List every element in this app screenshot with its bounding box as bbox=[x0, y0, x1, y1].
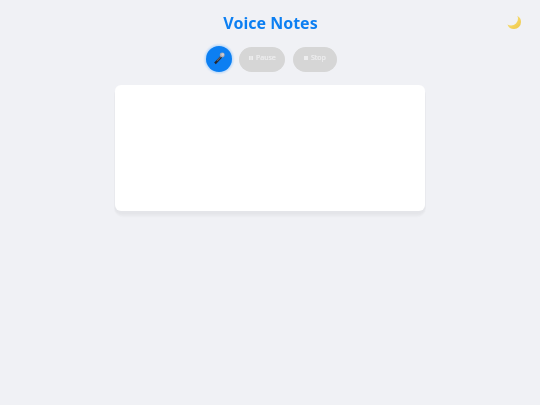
button[interactable]: Toggle dark mode bbox=[503, 11, 525, 33]
staticText: Stop bbox=[311, 53, 326, 63]
button[interactable]: Record bbox=[206, 46, 232, 72]
button[interactable]: Pause bbox=[239, 47, 285, 72]
button[interactable]: Stop bbox=[293, 47, 337, 72]
staticText: Voice Notes bbox=[223, 12, 318, 34]
staticText: Pause bbox=[256, 53, 276, 63]
